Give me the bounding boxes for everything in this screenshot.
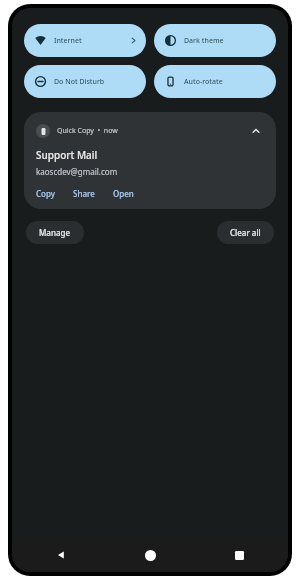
- staticText: Support Mail: [36, 148, 98, 162]
- button[interactable]: Clear all: [217, 221, 274, 244]
- staticText: Dark theme: [184, 36, 267, 46]
- button[interactable]: Recent apps: [226, 542, 252, 568]
- button[interactable]: Copy: [36, 188, 55, 199]
- button[interactable]: Do Not Disturb: [24, 65, 146, 98]
- button[interactable]: Share: [73, 188, 95, 199]
- staticText: Clear all: [230, 227, 261, 238]
- button[interactable]: Dark theme: [154, 24, 276, 57]
- button[interactable]: Open: [113, 188, 134, 199]
- staticText: kaoscdev@gmail.com: [36, 166, 118, 177]
- button[interactable]: Auto-rotate: [154, 65, 276, 98]
- staticText: Share: [73, 188, 95, 199]
- button[interactable]: Internet: [24, 24, 146, 57]
- staticText: Quick Copy • now: [57, 126, 118, 136]
- staticText: Internet: [54, 36, 130, 46]
- staticText: Copy: [36, 188, 55, 199]
- button[interactable]: Back: [48, 542, 74, 568]
- staticText: Open: [113, 188, 134, 199]
- staticText: Auto-rotate: [184, 77, 267, 87]
- staticText: Do Not Disturb: [54, 77, 137, 87]
- button[interactable]: Manage: [26, 221, 84, 244]
- button[interactable]: Home: [137, 542, 163, 568]
- button[interactable]: Collapse notification: [247, 122, 264, 139]
- button[interactable]: Quick Copy • now: [24, 112, 276, 209]
- staticText: Manage: [39, 227, 71, 238]
